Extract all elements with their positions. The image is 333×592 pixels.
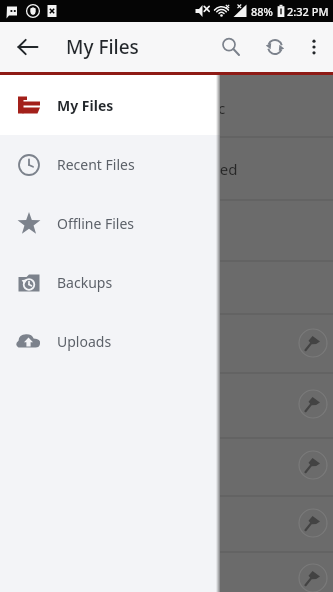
button[interactable]: My Files <box>0 75 220 135</box>
button[interactable]: Offline Files <box>0 194 220 253</box>
staticText: 2:32 PM <box>287 4 329 19</box>
button[interactable]: Uploads <box>0 312 220 371</box>
staticText: Recent Files <box>57 155 135 174</box>
button[interactable]: Refresh <box>255 27 295 67</box>
staticText: Offline Files <box>57 214 135 233</box>
staticText: My Files <box>66 34 139 60</box>
button[interactable]: Recent Files <box>0 135 220 194</box>
staticText: 88% <box>251 4 273 19</box>
staticText: Uploads <box>57 332 112 351</box>
staticText: Music <box>184 98 226 118</box>
button[interactable]: More options <box>296 29 332 65</box>
staticText: Published <box>168 159 238 179</box>
staticText: Backups <box>57 273 113 292</box>
button[interactable]: Backups <box>0 253 220 312</box>
staticText: My Files <box>57 96 114 115</box>
button[interactable]: Back <box>6 25 50 69</box>
button[interactable]: Search <box>211 27 251 67</box>
